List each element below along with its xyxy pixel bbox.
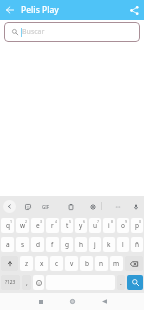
staticText: Buscar <box>22 27 45 37</box>
staticText: h <box>79 240 84 249</box>
button[interactable]: g <box>61 237 73 252</box>
staticText: f <box>51 240 54 249</box>
button[interactable]: Shift <box>1 256 18 271</box>
staticText: t <box>66 221 69 230</box>
button[interactable]: u <box>89 218 101 233</box>
staticText: z <box>25 259 29 268</box>
button[interactable]: v <box>65 256 78 271</box>
button[interactable]: h <box>75 237 87 252</box>
staticText: GIF <box>42 204 50 210</box>
button[interactable]: s <box>16 237 29 252</box>
staticText: a <box>6 240 10 249</box>
button[interactable]: n <box>95 256 108 271</box>
staticText: 7 <box>97 219 100 224</box>
staticText: e <box>36 221 40 230</box>
staticText: 4 <box>55 219 58 224</box>
button[interactable]: t <box>61 218 73 233</box>
staticText: ?123 <box>5 279 16 286</box>
staticText: v <box>70 259 74 268</box>
button[interactable]: Previous <box>3 200 16 213</box>
button[interactable]: Share <box>125 1 143 19</box>
button[interactable]: x <box>35 256 48 271</box>
staticText: w <box>20 221 26 230</box>
button[interactable]: GIF <box>39 200 52 213</box>
button[interactable]: l <box>117 237 129 252</box>
button[interactable]: d <box>31 237 44 252</box>
button[interactable]: Back <box>0 0 20 20</box>
button[interactable]: Back <box>88 293 120 310</box>
staticText: i <box>108 221 110 230</box>
staticText: m <box>113 259 120 268</box>
button[interactable]: Home <box>57 293 88 310</box>
staticText: c <box>55 259 59 268</box>
button[interactable]: i <box>103 218 115 233</box>
staticText: b <box>85 259 89 268</box>
staticText: p <box>135 221 139 230</box>
button[interactable]: Buscar <box>4 22 140 42</box>
staticText: q <box>6 221 10 230</box>
button[interactable]: r <box>46 218 59 233</box>
staticText: Pelis Play <box>21 4 59 16</box>
staticText: x <box>40 259 44 268</box>
button[interactable]: o <box>117 218 129 233</box>
staticText: y <box>79 221 83 230</box>
button[interactable]: j <box>89 237 101 252</box>
staticText: . <box>120 278 122 287</box>
button[interactable]: b <box>80 256 93 271</box>
staticText: k <box>107 240 111 249</box>
button[interactable]: m <box>110 256 123 271</box>
button[interactable]: . <box>117 275 125 290</box>
staticText: 5 <box>69 219 72 224</box>
staticText: ñ <box>135 240 140 249</box>
staticText: o <box>121 221 125 230</box>
button[interactable]: , <box>22 275 31 290</box>
button[interactable]: Backspace <box>125 256 143 271</box>
button[interactable]: Search <box>127 275 143 290</box>
button[interactable]: f <box>46 237 59 252</box>
button[interactable]: ñ <box>131 237 143 252</box>
staticText: 9 <box>125 219 128 224</box>
staticText: l <box>122 240 124 249</box>
button[interactable]: More options <box>111 200 124 213</box>
button[interactable]: e <box>31 218 44 233</box>
staticText: r <box>51 221 54 230</box>
staticText: g <box>65 240 69 249</box>
button[interactable]: y <box>75 218 87 233</box>
staticText: d <box>36 240 40 249</box>
staticText: , <box>26 278 28 287</box>
staticText: 6 <box>83 219 86 224</box>
button[interactable]: Emoji <box>33 275 44 290</box>
button[interactable]: Voice input <box>129 200 142 213</box>
button[interactable]: Clipboard <box>64 200 77 213</box>
button[interactable]: p <box>131 218 143 233</box>
button[interactable]: c <box>50 256 63 271</box>
button[interactable]: ?123 <box>1 275 20 290</box>
staticText: 2 <box>25 219 28 224</box>
staticText: u <box>93 221 98 230</box>
button[interactable]: k <box>103 237 115 252</box>
staticText: 3 <box>40 219 43 224</box>
staticText: 8 <box>111 219 114 224</box>
button[interactable]: Recents <box>25 293 57 310</box>
button[interactable]: q <box>1 218 14 233</box>
button[interactable]: w <box>16 218 29 233</box>
staticText: 0 <box>139 219 142 224</box>
button[interactable]: a <box>1 237 14 252</box>
staticText: n <box>99 259 104 268</box>
button[interactable]: z <box>20 256 33 271</box>
staticText: 1 <box>10 219 13 224</box>
staticText: s <box>21 240 25 249</box>
button[interactable]: Sticker <box>21 200 34 213</box>
button[interactable]: Settings <box>86 200 99 213</box>
staticText: j <box>94 240 96 249</box>
